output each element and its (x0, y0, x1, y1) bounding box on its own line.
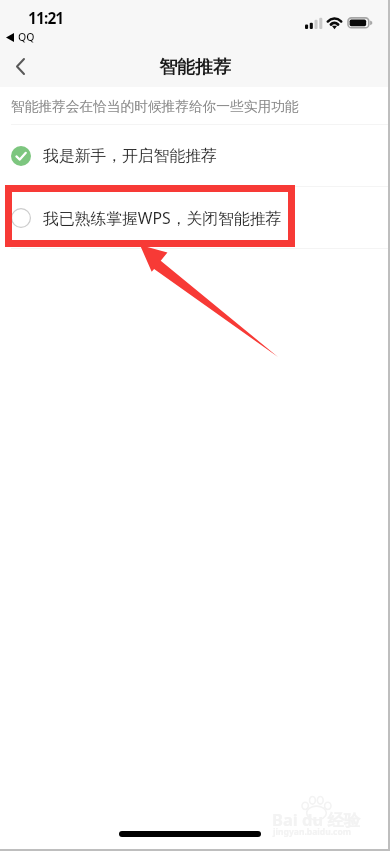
staticText: QQ (18, 30, 35, 44)
staticText: 11:21 (28, 7, 64, 28)
staticText: 我是新手，开启智能推荐 (43, 146, 217, 166)
staticText: 我已熟练掌握WPS，关闭智能推荐 (43, 207, 282, 229)
button[interactable]: 我是新手，开启智能推荐 (0, 125, 390, 186)
button[interactable]: 我已熟练掌握WPS，关闭智能推荐 (0, 187, 390, 248)
staticText: 智能推荐 (0, 56, 390, 79)
staticText: Bai du 经验 (272, 808, 361, 831)
staticText: 智能推荐会在恰当的时候推荐给你一些实用功能 (11, 98, 299, 115)
button[interactable]: Back (0, 46, 40, 87)
staticText: jingyan.baidu.com (273, 826, 352, 838)
